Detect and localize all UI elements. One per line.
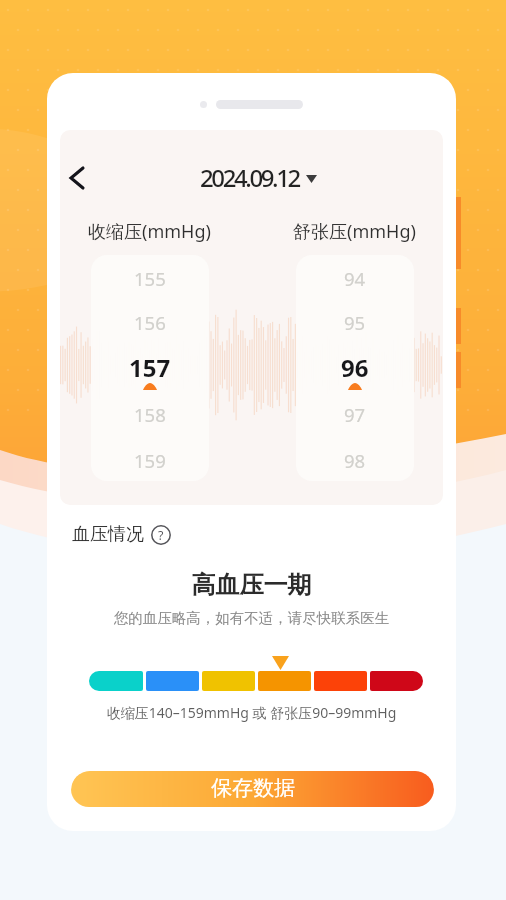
button[interactable] [258,671,311,691]
button[interactable] [146,671,199,691]
button[interactable]: Back [60,156,99,200]
staticText: 158 [134,402,166,427]
staticText: 94 [344,266,366,291]
button[interactable]: 94 [296,255,414,481]
staticText: 96 [341,351,369,384]
staticText: 您的血压略高，如有不适，请尽快联系医生 [47,609,456,627]
button[interactable]: 保存数据 [71,771,434,807]
staticText: 98 [344,448,366,473]
staticText: 舒张压(mmHg) [293,219,416,244]
staticText: 159 [134,448,166,473]
button[interactable]: 血压情况 [68,520,175,549]
staticText: 2024.09.12 [200,161,299,194]
staticText: 97 [344,402,366,427]
button[interactable]: 155 [91,255,209,481]
staticText: 保存数据 [211,775,295,801]
button[interactable] [370,671,423,691]
staticText: 155 [134,266,166,291]
other: Help [151,525,171,545]
button[interactable] [202,671,255,691]
button[interactable] [314,671,367,691]
staticText: 95 [344,310,366,335]
button[interactable]: 2024.09.12 [197,158,320,197]
staticText: 高血压一期 [47,570,456,600]
staticText: ? [158,527,164,544]
staticText: 157 [129,351,171,384]
button[interactable] [89,671,143,691]
staticText: 收缩压(mmHg) [88,219,211,244]
staticText: 156 [134,310,166,335]
staticText: 血压情况 [72,523,144,546]
staticText: 收缩压140–159mmHg 或 舒张压90–99mmHg [47,703,456,722]
